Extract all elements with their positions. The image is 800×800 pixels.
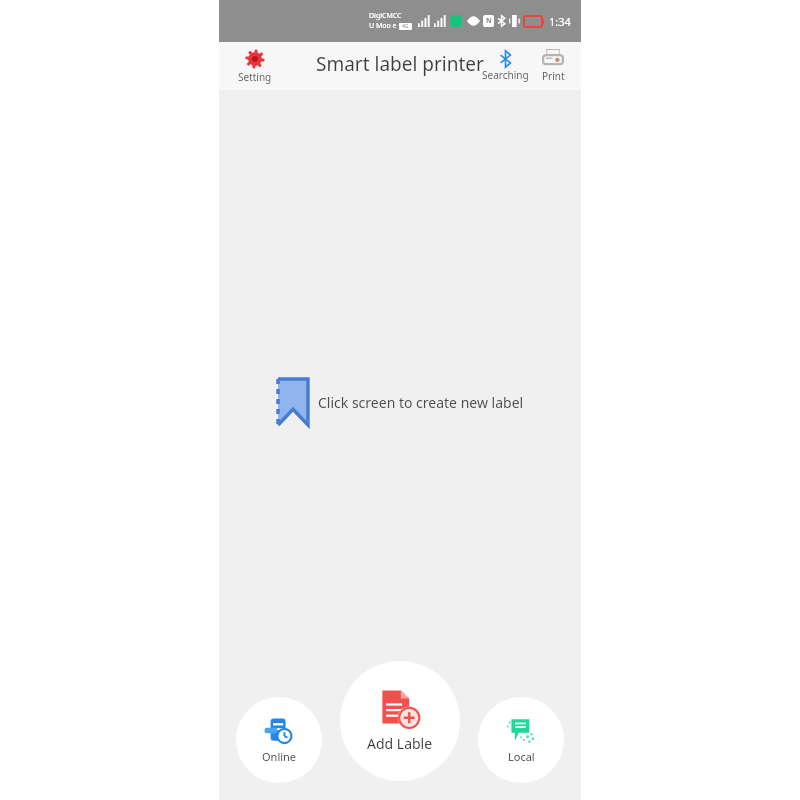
button[interactable]: Setting: [231, 49, 279, 84]
staticText: Online: [262, 749, 297, 764]
button[interactable]: Local: [478, 697, 564, 783]
staticText: Add Lable: [367, 734, 433, 753]
staticText: Setting: [238, 70, 272, 84]
staticText: U Moo e: [369, 21, 397, 31]
staticText: Click screen to create new label: [318, 393, 524, 412]
staticText: Print: [542, 69, 565, 83]
button[interactable]: Print: [533, 49, 573, 83]
button[interactable]: Bluetooth Searching: [482, 50, 529, 82]
staticText: DigiCMCC: [369, 11, 402, 21]
staticText: 1:34: [549, 14, 571, 29]
button[interactable]: Online: [236, 697, 322, 783]
button[interactable]: Add Lable: [340, 661, 460, 781]
staticText: Local: [508, 749, 535, 764]
staticText: Searching: [482, 68, 529, 82]
staticText: 4G: [402, 23, 409, 30]
button[interactable]: Click screen to create new label: [276, 379, 524, 425]
staticText: Smart label printer: [316, 51, 484, 77]
staticText: N: [486, 16, 492, 26]
